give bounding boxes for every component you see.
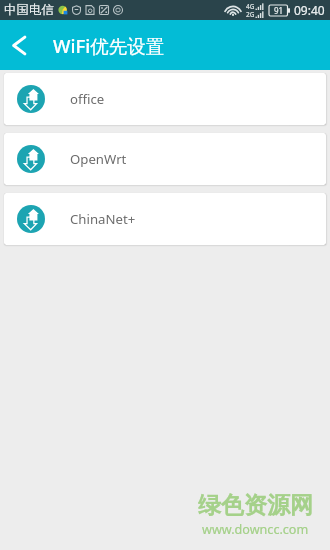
button[interactable]: office bbox=[4, 73, 326, 125]
staticText: 91 bbox=[274, 5, 284, 16]
staticText: 2G bbox=[246, 10, 255, 18]
staticText: 中国电信 bbox=[4, 2, 54, 18]
staticText: 绿色资源网 bbox=[198, 491, 313, 520]
staticText: OpenWrt bbox=[70, 150, 127, 168]
staticText: office bbox=[70, 90, 105, 108]
staticText: ChinaNet+ bbox=[70, 210, 136, 228]
staticText: www.downcc.com bbox=[202, 521, 309, 538]
button[interactable]: ChinaNet+ bbox=[4, 193, 326, 245]
staticText: 09:40 bbox=[294, 2, 325, 18]
staticText: 4G bbox=[246, 2, 255, 10]
button[interactable]: OpenWrt bbox=[4, 133, 326, 185]
staticText: WiFi优先设置 bbox=[53, 33, 165, 58]
button[interactable]: Back bbox=[0, 26, 38, 64]
